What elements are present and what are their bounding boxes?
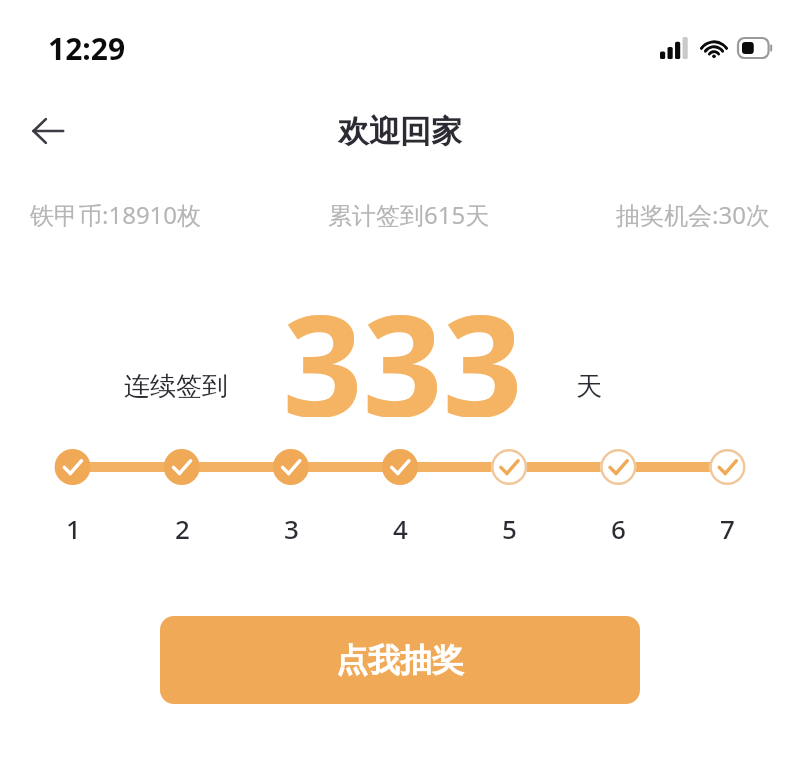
- staticText: 333: [282, 267, 523, 417]
- button[interactable]: 点我抽奖: [160, 616, 640, 704]
- staticText: 7: [720, 511, 735, 546]
- staticText: 12:29: [48, 28, 126, 69]
- staticText: 点我抽奖: [336, 640, 464, 680]
- staticText: 1: [66, 511, 81, 546]
- staticText: 6: [611, 511, 626, 546]
- staticText: 3: [284, 511, 299, 546]
- staticText: 4: [393, 511, 408, 546]
- staticText: 连续签到: [124, 370, 228, 403]
- staticText: 2: [175, 511, 190, 546]
- staticText: 铁甲币:18910枚: [30, 198, 202, 231]
- staticText: 5: [502, 511, 517, 546]
- staticText: 天: [576, 370, 602, 403]
- staticText: 累计签到615天: [328, 198, 490, 231]
- staticText: 抽奖机会:30次: [616, 198, 770, 231]
- button[interactable]: Back: [20, 103, 76, 159]
- staticText: 欢迎回家: [338, 112, 462, 151]
